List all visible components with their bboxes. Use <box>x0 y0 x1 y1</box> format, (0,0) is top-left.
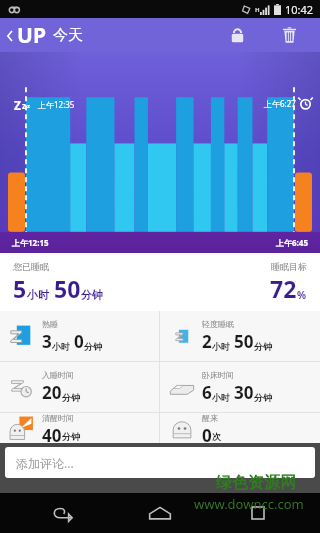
staticText: 上午12:15 <box>12 237 49 248</box>
staticText: 轻度睡眠 <box>202 319 234 329</box>
button[interactable]: Lock <box>220 18 254 52</box>
staticText: 上午6:45 <box>276 237 308 248</box>
staticText: 5 <box>13 273 27 304</box>
staticText: 清醒时间 <box>42 413 74 423</box>
button[interactable]: Back <box>40 496 84 530</box>
button[interactable]: Home <box>138 496 182 530</box>
staticText: 6 <box>202 381 212 404</box>
staticText: UP <box>17 21 46 50</box>
staticText: 分钟 <box>254 392 272 403</box>
staticText: 0 <box>74 330 84 353</box>
staticText: 72 <box>270 273 297 304</box>
staticText: 次 <box>212 431 221 442</box>
staticText: 分钟 <box>254 341 272 352</box>
button[interactable]: 清醒时间 <box>0 413 159 443</box>
button[interactable]: 熟睡 <box>0 311 159 361</box>
staticText: 熟睡 <box>42 319 58 329</box>
staticText: www.downcc.com <box>194 495 304 513</box>
button[interactable]: 添加评论... <box>5 447 315 478</box>
staticText: 分钟 <box>84 341 102 352</box>
staticText: 绿色资源网 <box>216 473 296 493</box>
button[interactable]: 入睡时间 <box>0 362 159 412</box>
staticText: 上午12:35 <box>38 99 75 110</box>
staticText: 小时 <box>212 341 230 352</box>
staticText: 今天 <box>53 26 83 45</box>
staticText: 分钟 <box>81 288 103 302</box>
staticText: z <box>27 102 30 110</box>
staticText: 小时 <box>52 341 70 352</box>
staticText: 小时 <box>27 288 49 302</box>
button[interactable]: Delete <box>272 18 306 52</box>
button[interactable]: UP <box>5 21 83 50</box>
button[interactable]: 醒来 <box>160 413 320 443</box>
staticText: 添加评论... <box>16 455 74 471</box>
staticText: 2 <box>202 330 212 353</box>
button[interactable]: Recent apps <box>236 496 280 530</box>
staticText: 入睡时间 <box>42 370 74 380</box>
staticText: z <box>22 100 26 111</box>
staticText: 您已睡眠 <box>13 261 49 272</box>
staticText: 小时 <box>212 392 230 403</box>
staticText: % <box>297 288 307 302</box>
button[interactable]: 轻度睡眠 <box>160 311 320 361</box>
staticText: 睡眠目标 <box>271 261 307 272</box>
staticText: 30 <box>234 381 254 404</box>
staticText: 50 <box>54 273 81 304</box>
staticText: 10:42 <box>285 2 314 17</box>
staticText: H <box>255 6 260 14</box>
staticText: 3 <box>42 330 52 353</box>
staticText: Z <box>14 97 21 111</box>
staticText: 分钟 <box>62 431 80 442</box>
staticText: 上午6:27 <box>264 98 296 109</box>
staticText: 分钟 <box>62 392 80 403</box>
staticText: 40 <box>42 424 62 443</box>
staticText: 卧床时间 <box>202 370 234 380</box>
staticText: 0 <box>202 424 212 443</box>
staticText: 20 <box>42 381 62 404</box>
staticText: 50 <box>234 330 254 353</box>
staticText: 醒来 <box>202 413 218 423</box>
button[interactable]: 卧床时间 <box>160 362 320 412</box>
